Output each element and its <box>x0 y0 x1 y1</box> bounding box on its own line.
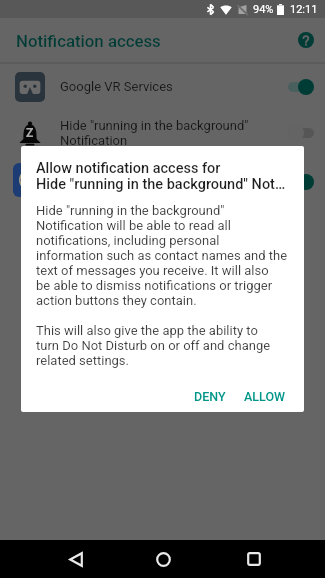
staticText: Google VR Services <box>60 79 173 94</box>
button[interactable]: Rings Extended <box>0 157 325 206</box>
button[interactable]: Home <box>145 541 181 577</box>
staticText: Hide "running in the background" Notific… <box>36 203 288 368</box>
staticText: DENY <box>194 389 226 404</box>
staticText: Notification <box>60 133 128 148</box>
button[interactable]: ALLOW <box>235 383 295 410</box>
staticText: Notification access <box>16 31 161 51</box>
staticText: Rings Extended <box>60 174 150 189</box>
button[interactable]: DENY <box>185 383 235 410</box>
button[interactable]: Google VR Services <box>0 64 325 109</box>
staticText: Hide "running in the background" <box>60 118 249 133</box>
button[interactable]: Back <box>58 541 94 577</box>
staticText: ALLOW <box>244 389 286 404</box>
staticText: 94% <box>253 3 274 16</box>
staticText: Z <box>26 126 34 140</box>
button[interactable]: Recents <box>236 541 272 577</box>
button[interactable]: Help <box>291 25 321 55</box>
staticText: 12:11 <box>290 3 318 16</box>
button[interactable]: Z <box>0 109 325 157</box>
staticText: Allow notification access for Hide "runn… <box>36 160 286 192</box>
